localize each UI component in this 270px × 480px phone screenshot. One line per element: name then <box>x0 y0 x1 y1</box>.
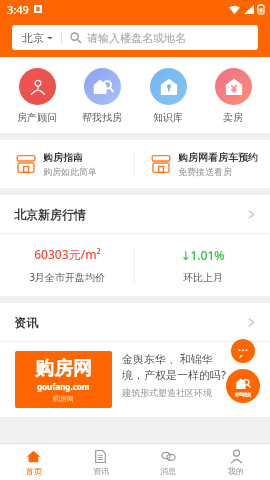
staticText: 购房网 <box>35 357 92 381</box>
button[interactable]: 60303元/m² <box>0 234 134 296</box>
button[interactable]: 帮我找房 <box>226 369 260 403</box>
staticText: 知识库 <box>153 111 183 124</box>
button[interactable]: 房产顾问 <box>8 68 66 124</box>
staticText: 北京新房行情 <box>14 207 86 222</box>
staticText: 环比上月 <box>183 271 223 284</box>
button[interactable]: 消息 <box>134 444 202 480</box>
button[interactable]: ↓1.01% <box>135 234 270 296</box>
button[interactable]: 我的 <box>202 444 270 480</box>
button[interactable]: 北京 <box>12 25 258 50</box>
staticText: 资讯 <box>14 315 38 330</box>
staticText: 60303元/m² <box>34 246 101 262</box>
button[interactable]: 购房指南 <box>0 140 134 188</box>
button[interactable]: 首页 <box>0 444 67 480</box>
button[interactable]: 北京新房行情 <box>0 195 270 233</box>
staticText: 卖房 <box>223 111 243 124</box>
staticText: 我的 <box>228 466 244 476</box>
staticText: 购房指南 <box>43 151 83 164</box>
staticText: 3月全市开盘均价 <box>29 270 105 284</box>
staticText: 免费接送看房 <box>178 166 232 177</box>
button[interactable]: 购房网 <box>0 342 270 417</box>
button[interactable]: 购房网看房车预约 <box>135 140 270 188</box>
staticText: 帮我找房 <box>82 111 122 124</box>
staticText: 帮我找房 <box>235 392 251 397</box>
staticText: 3:49 <box>7 2 29 17</box>
staticText: 资讯 <box>93 466 109 476</box>
button[interactable]: 资讯 <box>0 303 270 341</box>
staticText: 消息 <box>160 466 176 476</box>
staticText: 北京 <box>22 31 44 45</box>
staticText: 购房如此简单 <box>43 166 97 177</box>
button[interactable]: 知识库 <box>139 68 197 124</box>
staticText: ↓1.01% <box>180 247 225 263</box>
staticText: 购房网 <box>53 394 74 403</box>
staticText: 购房网看房车预约 <box>178 151 258 164</box>
staticText: 首页 <box>26 466 42 476</box>
button[interactable]: 在线客服 <box>231 339 255 363</box>
button[interactable]: 资讯 <box>67 444 134 480</box>
staticText: 建筑形式塑造社区环境 <box>122 387 212 398</box>
staticText: 请输入楼盘名或地名 <box>87 31 186 45</box>
button[interactable]: 帮我找房 <box>73 68 131 124</box>
button[interactable]: 卖房 <box>204 68 262 124</box>
staticText: 金舆东华 、和锦华 境，产权是一样的吗? <box>122 351 226 382</box>
staticText: 房产顾问 <box>17 111 57 124</box>
staticText: goufang.com <box>37 381 90 392</box>
